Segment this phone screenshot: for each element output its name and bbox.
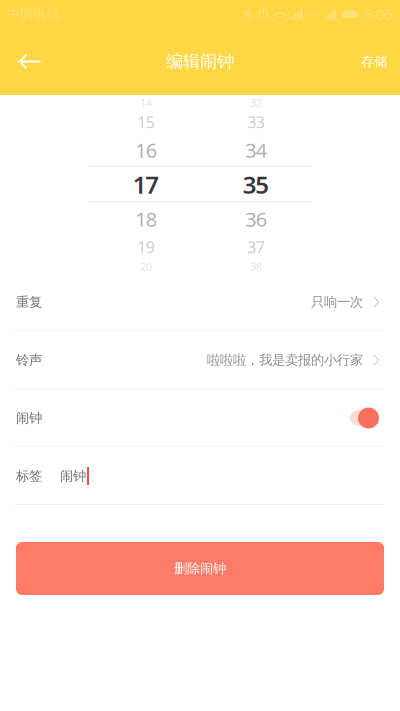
staticText: 闹钟 <box>60 468 86 484</box>
staticText: 37 <box>247 236 265 258</box>
button[interactable]: 标签 <box>0 447 400 505</box>
button[interactable]: 闹钟 <box>0 389 400 447</box>
button[interactable]: 存储 <box>347 38 396 84</box>
staticText: 35 <box>243 169 269 200</box>
staticText: 34 <box>245 137 267 163</box>
staticText: — <box>308 6 320 22</box>
staticText: 32 <box>250 95 262 110</box>
button[interactable]: 删除闹钟 <box>16 542 384 595</box>
staticText: 编辑闹钟 <box>166 51 234 72</box>
button[interactable]: 重复 <box>0 273 400 331</box>
button[interactable]: 铃声 <box>0 331 400 389</box>
staticText: 20 <box>140 259 152 274</box>
staticText: 17 <box>133 169 159 200</box>
staticText: 铃声 <box>16 352 42 368</box>
staticText: 6:06 <box>364 4 392 24</box>
staticText: 闹钟 <box>16 410 42 426</box>
staticText: 啦啦啦，我是卖报的小行家 <box>207 352 363 368</box>
staticText: 36 <box>245 206 267 232</box>
staticText: 19 <box>137 236 155 258</box>
staticText: 标签 <box>16 468 42 484</box>
staticText: 15 <box>137 111 155 133</box>
staticText: 中国电信 <box>7 6 59 22</box>
staticText: 存储 <box>361 53 387 70</box>
button[interactable]: Back <box>5 38 53 84</box>
staticText: 删除闹钟 <box>174 560 226 577</box>
staticText: 14 <box>140 95 152 110</box>
staticText: 重复 <box>16 294 42 310</box>
staticText: 38 <box>250 259 262 274</box>
staticText: 只响一次 <box>311 294 363 310</box>
staticText: 16 <box>135 137 157 163</box>
staticText: 18 <box>135 206 157 232</box>
staticText: 33 <box>247 111 265 133</box>
